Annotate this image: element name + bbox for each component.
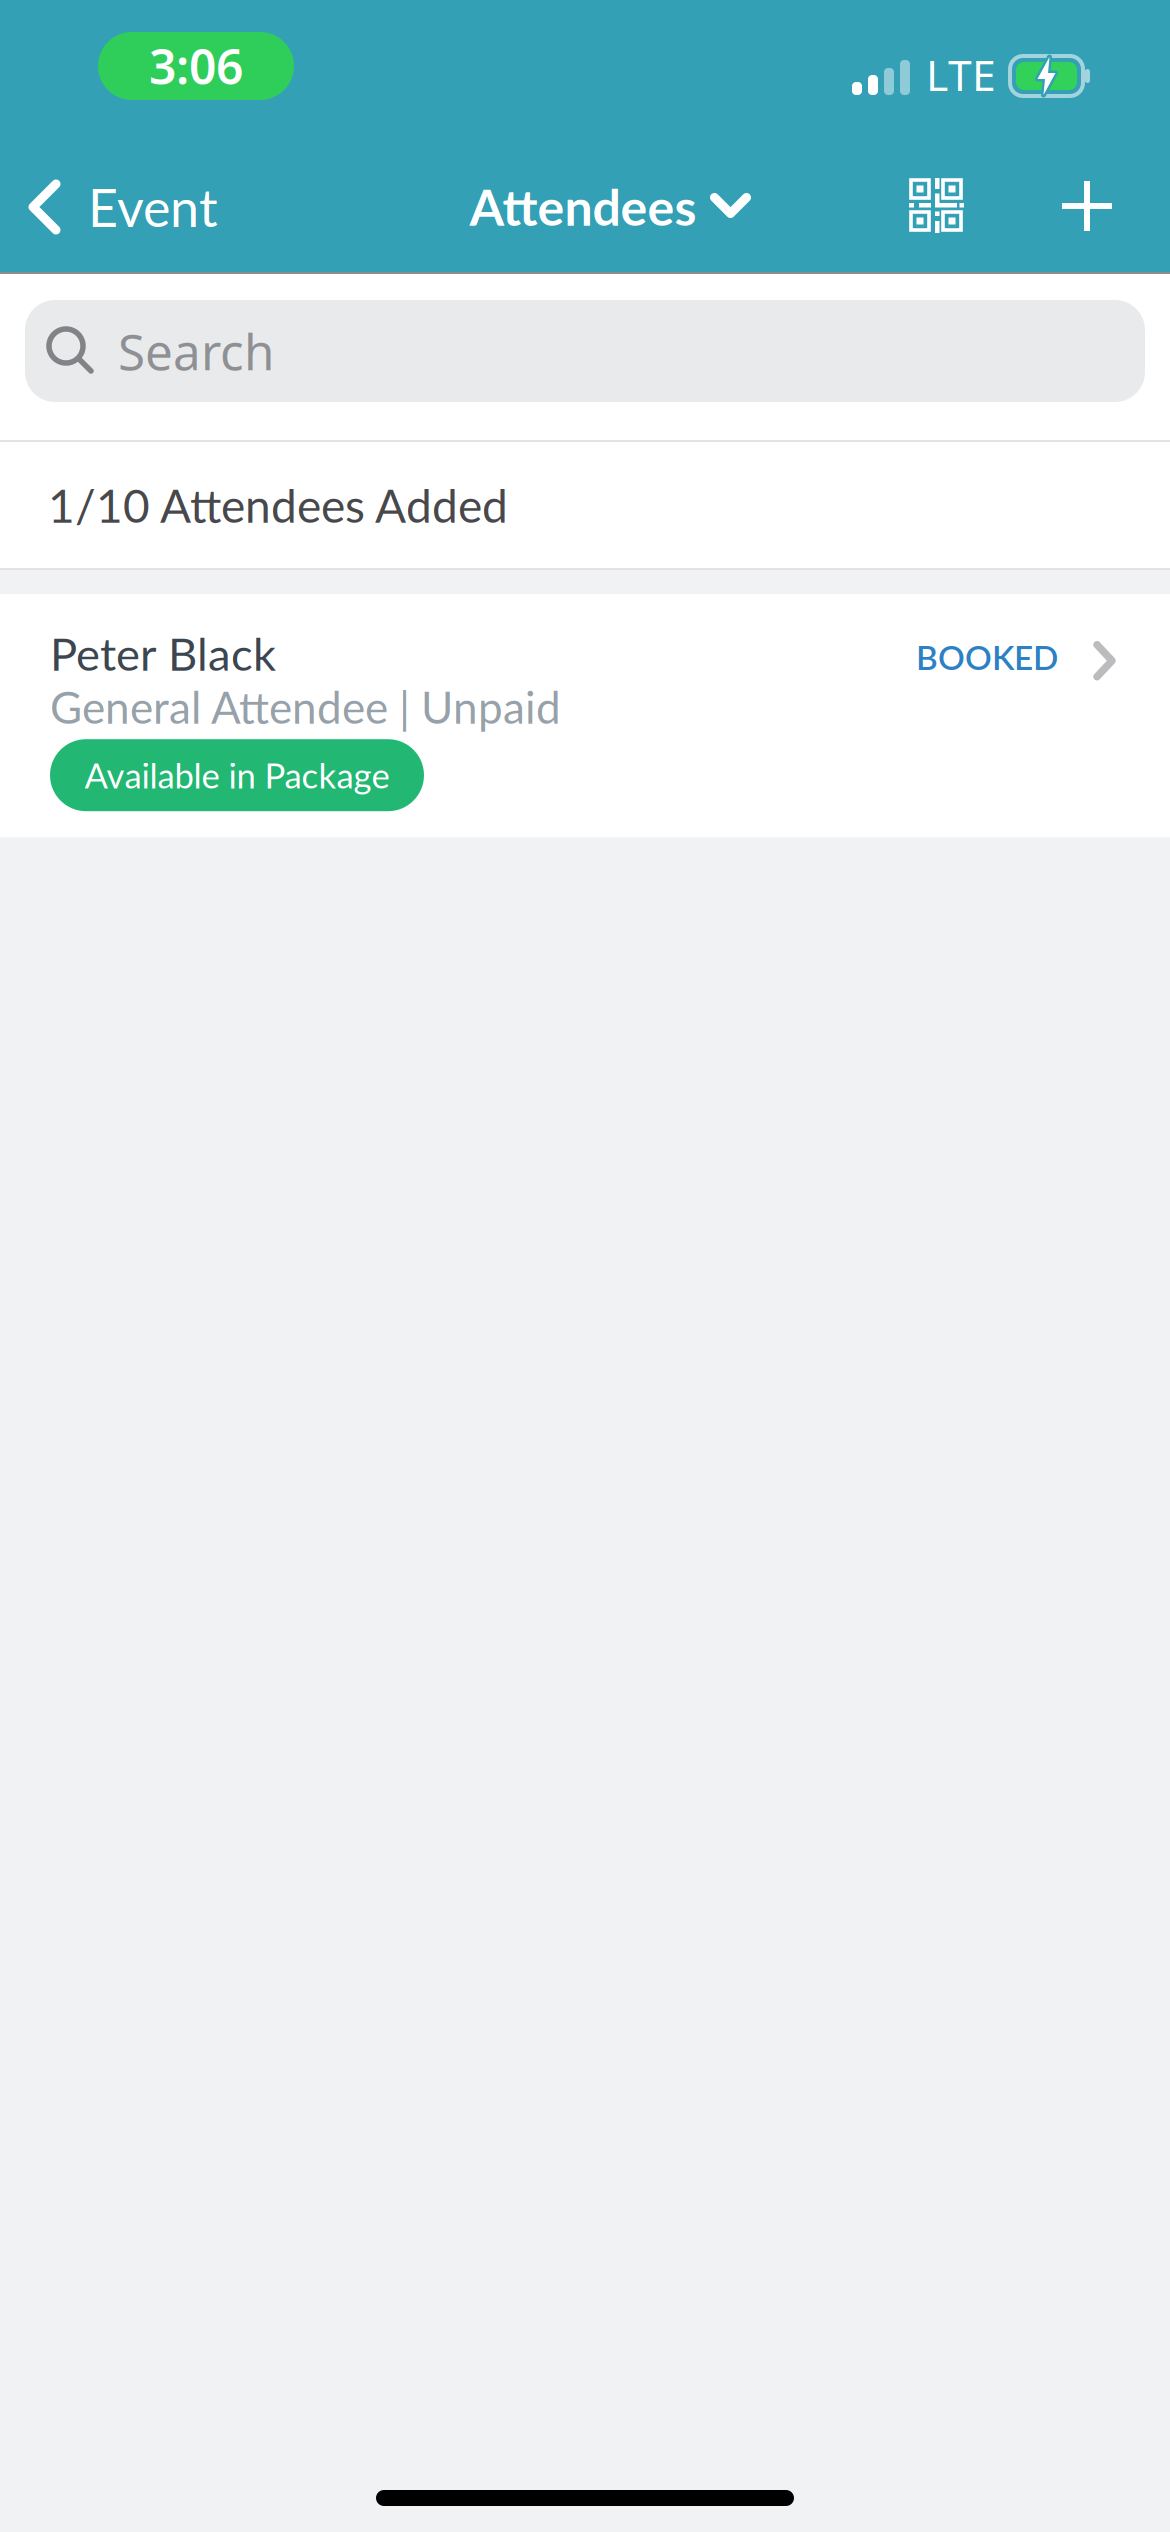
- staticText: General Attendee | Unpaid: [50, 680, 561, 733]
- button[interactable]: Add attendee: [1062, 165, 1112, 231]
- staticText: 1/10 Attendees Added: [48, 477, 508, 533]
- button[interactable]: Peter Black: [0, 594, 1170, 837]
- button[interactable]: Search: [25, 300, 1145, 402]
- button[interactable]: Event: [28, 158, 218, 238]
- staticText: 3:06: [149, 34, 243, 98]
- staticText: Available in Package: [84, 754, 389, 796]
- staticText: Event: [88, 176, 218, 238]
- staticText: Attendees: [469, 176, 696, 236]
- button[interactable]: Attendees: [421, 159, 748, 236]
- staticText: Search: [118, 318, 274, 384]
- staticText: Peter Black: [50, 626, 276, 680]
- button[interactable]: Scan QR code: [909, 163, 964, 233]
- staticText: LTE: [926, 46, 996, 103]
- staticText: BOOKED: [916, 637, 1058, 677]
